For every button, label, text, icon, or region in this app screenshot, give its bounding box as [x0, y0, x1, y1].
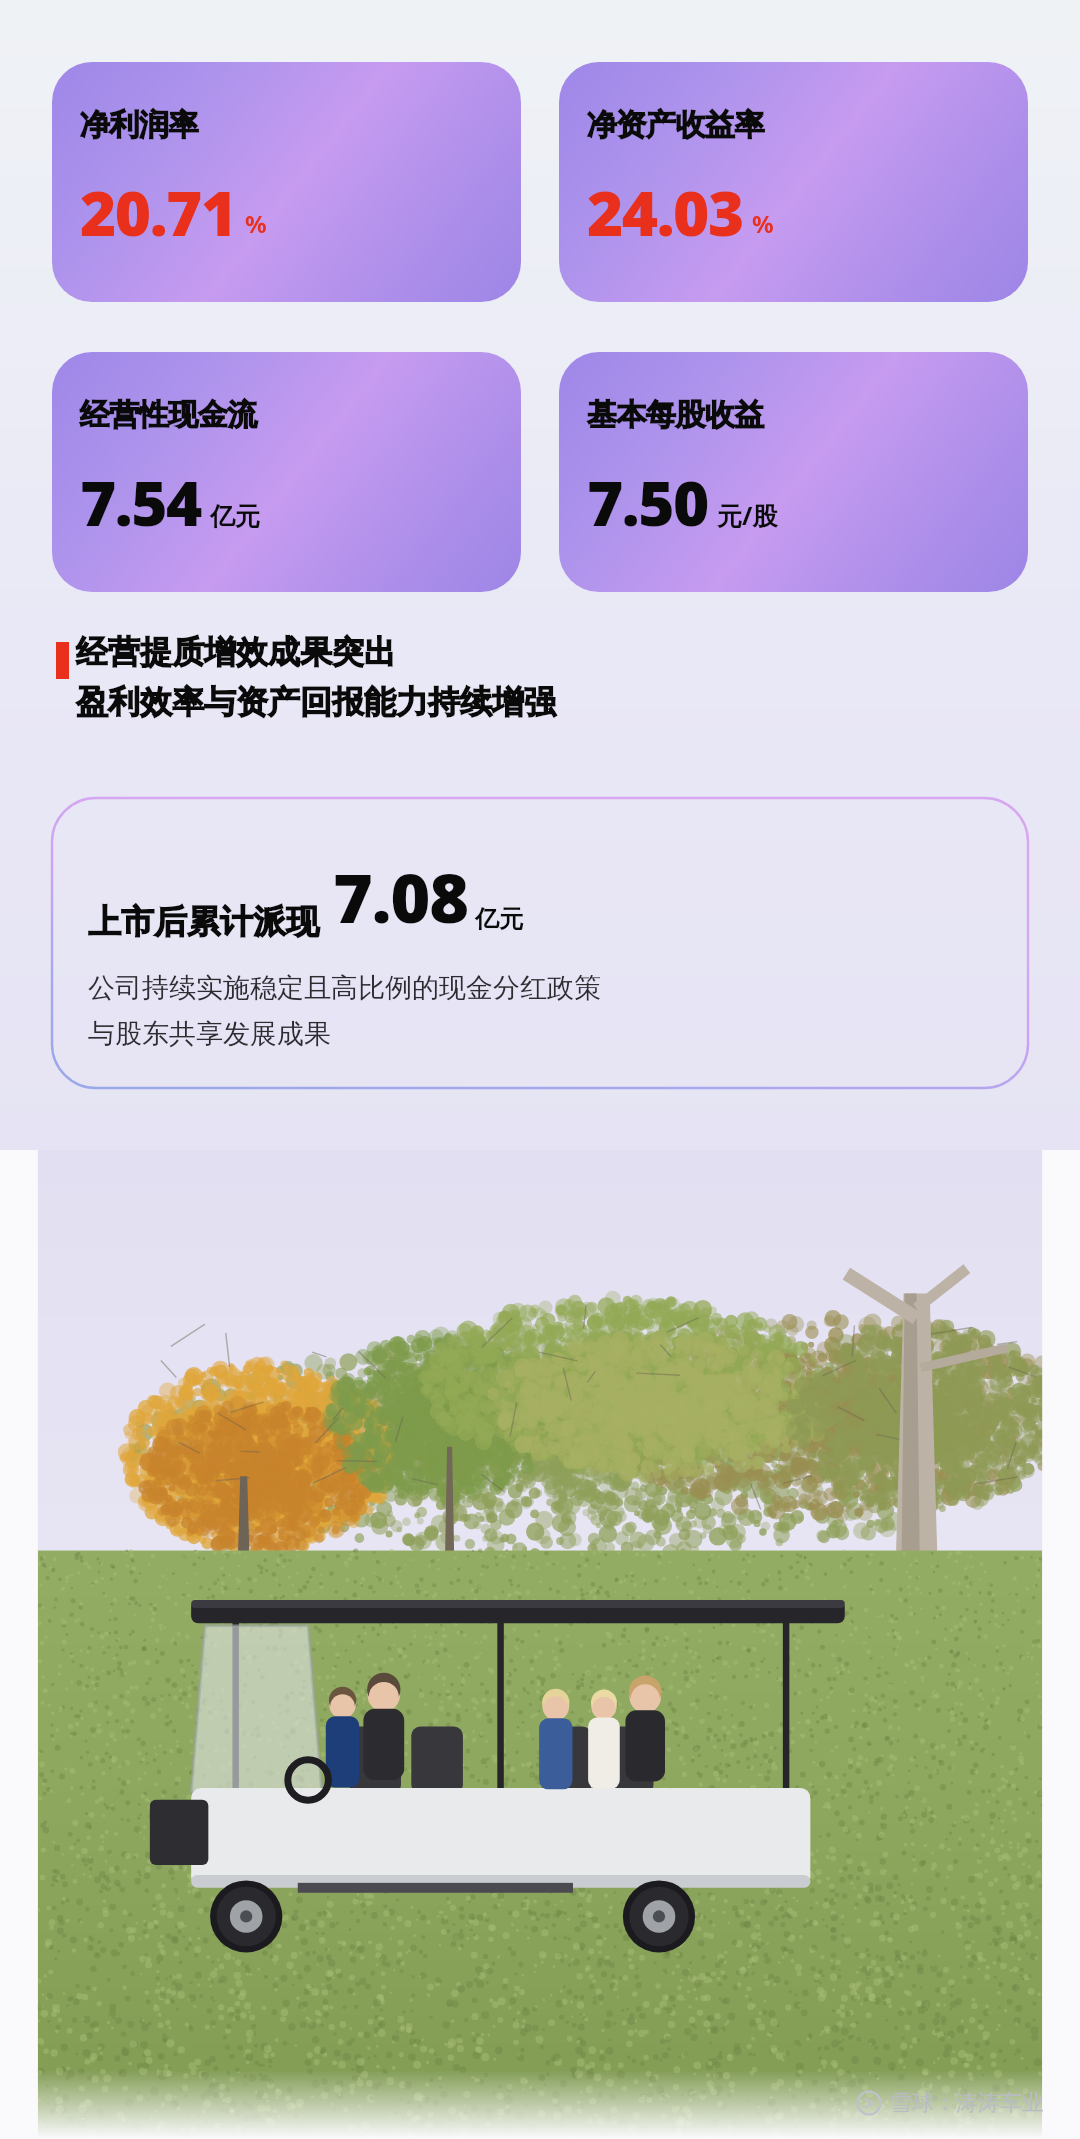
staticText: 基本每股收益 — [587, 396, 764, 434]
staticText: 净资产收益率 — [587, 106, 764, 144]
staticText: % — [752, 207, 774, 240]
staticText: 上市后累计派现 — [88, 901, 319, 943]
button[interactable]: 上市后累计派现 — [52, 798, 1028, 1088]
button[interactable]: 净资产收益率 — [559, 62, 1028, 302]
staticText: 24.03 — [587, 170, 743, 254]
staticText: % — [245, 207, 267, 240]
button[interactable]: 基本每股收益 — [559, 352, 1028, 592]
staticText: 亿元 — [475, 904, 523, 934]
staticText: 亿元 — [210, 501, 260, 532]
staticText: 雪球：涛涛车业 — [890, 2089, 1044, 2117]
staticText: 经营提质增效成果突出 — [76, 632, 396, 672]
staticText: 与股东共享发展成果 — [88, 1017, 331, 1051]
staticText: 20.71 — [80, 170, 236, 254]
button[interactable]: 净利润率 — [52, 62, 521, 302]
staticText: 7.08 — [333, 850, 469, 943]
staticText: 盈利效率与资产回报能力持续增强 — [76, 682, 556, 722]
button[interactable]: 经营性现金流 — [52, 352, 521, 592]
staticText: 7.54 — [80, 460, 201, 544]
staticText: 7.50 — [587, 460, 708, 544]
staticText: 公司持续实施稳定且高比例的现金分红政策 — [88, 971, 601, 1005]
staticText: 经营性现金流 — [80, 396, 257, 434]
staticText: 元/股 — [717, 498, 778, 532]
staticText: 净利润率 — [80, 106, 198, 144]
